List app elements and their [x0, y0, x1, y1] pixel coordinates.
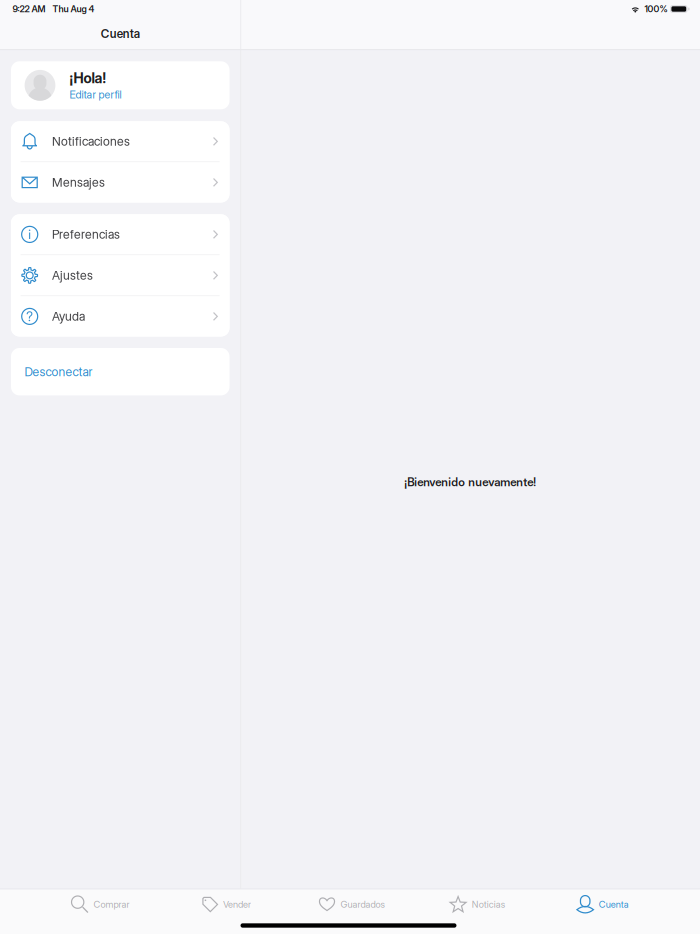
staticText: Noticias [472, 899, 505, 910]
staticText: Thu Aug 4 [52, 3, 94, 14]
staticText: Ayuda [52, 309, 85, 324]
button[interactable]: Guardados [287, 887, 413, 921]
staticText: ? [26, 309, 33, 324]
button[interactable]: ¡Hola! [11, 61, 229, 109]
staticText: 100% [644, 3, 667, 14]
staticText: Notificaciones [52, 134, 130, 149]
button[interactable]: Cuenta [538, 887, 664, 921]
staticText: Guardados [341, 899, 385, 910]
button[interactable]: Mensajes [11, 162, 229, 202]
staticText: Ajustes [52, 268, 93, 283]
button[interactable]: Ajustes [11, 255, 229, 295]
button[interactable]: Comprar [36, 887, 162, 921]
button[interactable]: Notificaciones [11, 121, 229, 161]
staticText: ¡Bienvenido nuevamente! [404, 475, 536, 489]
staticText: Mensajes [52, 175, 105, 190]
button[interactable]: Vender [162, 887, 287, 921]
staticText: Vender [223, 899, 251, 910]
staticText: Preferencias [52, 227, 120, 242]
staticText: ¡Hola! [70, 69, 106, 87]
button[interactable]: i [11, 214, 229, 254]
button[interactable]: Desconectar [11, 348, 229, 395]
staticText: Desconectar [25, 364, 93, 379]
staticText: i [28, 226, 31, 243]
button[interactable]: ? [11, 296, 229, 336]
staticText: Cuenta [599, 899, 629, 910]
button[interactable]: Noticias [413, 887, 538, 921]
staticText: Comprar [93, 899, 129, 910]
staticText: 9:22 AM [12, 3, 45, 14]
staticText: Cuenta [101, 27, 140, 41]
staticText: Editar perfil [70, 88, 122, 101]
